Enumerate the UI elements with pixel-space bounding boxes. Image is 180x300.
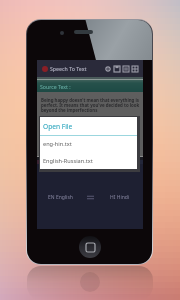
- staticText: Speech To Text: [50, 65, 87, 72]
- staticText: Open File: [43, 122, 73, 131]
- button[interactable]: Action 1: [112, 60, 121, 77]
- button[interactable]: Home: [79, 236, 101, 258]
- button[interactable]: English-Russian.txt: [40, 152, 137, 169]
- staticText: English-Russian.txt: [43, 157, 93, 165]
- staticText: EN English: [48, 194, 73, 201]
- staticText: Being happy doesn't mean that everything…: [41, 97, 140, 113]
- button[interactable]: Source Text :: [37, 80, 143, 92]
- button[interactable]: eng-hin.txt: [40, 136, 137, 152]
- staticText: Source Text :: [40, 83, 71, 90]
- button[interactable]: Swap languages: [83, 189, 97, 205]
- staticText: HI Hindi: [110, 194, 130, 201]
- button[interactable]: HI Hindi: [97, 189, 143, 205]
- button[interactable]: Action 2: [121, 60, 130, 77]
- button[interactable]: Action 3: [130, 60, 139, 77]
- button[interactable]: Speech To Text: [37, 60, 143, 77]
- button[interactable]: Action 0: [103, 60, 112, 77]
- staticText: eng-hin.txt: [43, 140, 72, 148]
- staticText: the sun always shines above the clouds g…: [41, 145, 127, 156]
- button[interactable]: EN English: [37, 189, 83, 205]
